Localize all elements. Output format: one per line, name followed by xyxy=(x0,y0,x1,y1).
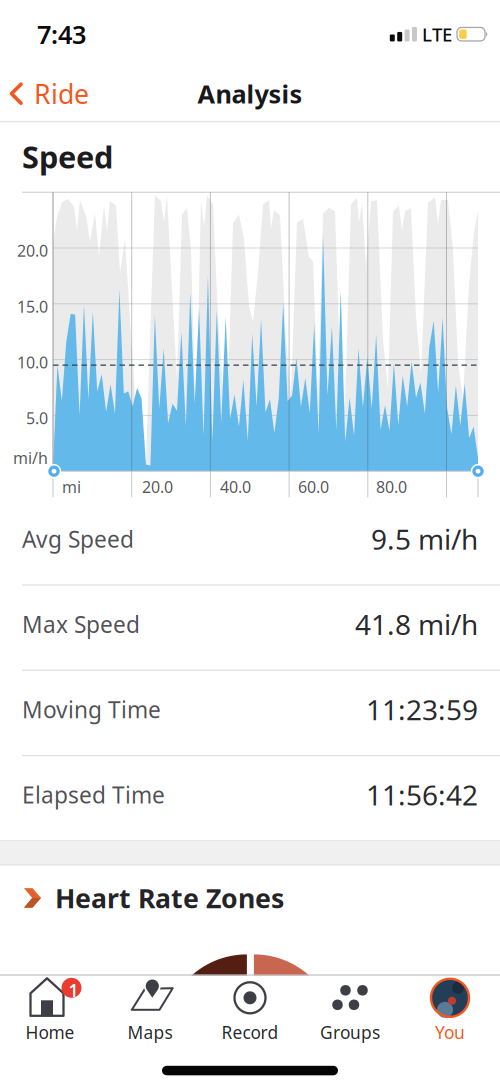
staticText: 11:23:59 xyxy=(366,691,478,728)
staticText: 10.0 xyxy=(17,352,48,373)
staticText: 1 xyxy=(68,979,78,1002)
staticText: Heart Rate Zones xyxy=(55,880,284,916)
staticText: Ride xyxy=(34,76,89,111)
staticText: Elapsed Time xyxy=(22,780,165,810)
staticText: 20.0 xyxy=(17,240,48,261)
button[interactable]: You xyxy=(400,977,500,1044)
staticText: mi/h xyxy=(13,447,48,468)
staticText: Groups xyxy=(320,1021,380,1044)
button[interactable]: Groups xyxy=(300,977,400,1044)
staticText: 7:43 xyxy=(37,17,86,51)
staticText: 60.0 xyxy=(298,476,329,497)
staticText: 9.5 mi/h xyxy=(371,520,478,557)
button[interactable]: Ride xyxy=(0,76,89,111)
staticText: 41.8 mi/h xyxy=(355,606,478,643)
staticText: 80.0 xyxy=(376,476,407,497)
staticText: You xyxy=(435,1021,465,1044)
staticText: Max Speed xyxy=(22,609,140,639)
staticText: Speed xyxy=(22,136,113,177)
staticText: 40.0 xyxy=(220,476,251,497)
staticText: 20.0 xyxy=(142,476,173,497)
button[interactable]: Maps xyxy=(100,977,200,1044)
staticText: Home xyxy=(25,1021,74,1044)
staticText: LTE xyxy=(422,22,452,47)
staticText: Moving Time xyxy=(22,694,161,724)
staticText: Analysis xyxy=(197,77,302,110)
button[interactable]: Record xyxy=(200,977,300,1044)
staticText: 15.0 xyxy=(17,296,48,317)
staticText: Maps xyxy=(127,1021,172,1044)
staticText: 5.0 xyxy=(26,407,48,429)
staticText: Record xyxy=(221,1021,278,1044)
staticText: 11:56:42 xyxy=(366,776,478,813)
button[interactable]: 1 xyxy=(0,977,100,1044)
staticText: Avg Speed xyxy=(22,524,134,554)
staticText: mi xyxy=(62,476,81,497)
